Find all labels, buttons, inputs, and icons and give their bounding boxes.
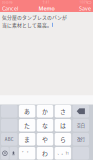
staticText: ら — [60, 135, 66, 143]
staticText: Save — [79, 5, 91, 12]
button[interactable]: ら — [55, 133, 71, 145]
staticText: か — [42, 107, 48, 115]
button[interactable]: 改行 — [73, 133, 89, 145]
button[interactable]: さ — [55, 105, 71, 117]
button[interactable]: Delete — [73, 105, 89, 117]
button[interactable]: や — [37, 133, 53, 145]
staticText: 気分屋のタンブレスのバンが — [2, 14, 67, 21]
staticText: わ — [42, 149, 48, 157]
staticText: や — [42, 135, 48, 143]
button[interactable]: は — [55, 119, 71, 131]
staticText: は — [60, 121, 66, 129]
button[interactable]: Next keyboard — [1, 147, 9, 159]
staticText: Cancel — [2, 5, 18, 12]
staticText: 空白 — [77, 122, 85, 128]
staticText: 改行 — [77, 136, 85, 142]
staticText: 100% — [79, 1, 87, 4]
staticText: あ — [24, 107, 30, 115]
button[interactable]: な — [37, 119, 53, 131]
staticText: さ — [60, 107, 66, 115]
button[interactable]: Save — [77, 5, 93, 12]
staticText: 、。?! — [57, 151, 68, 156]
staticText: ゛゜ — [22, 150, 32, 157]
button[interactable]: か — [37, 105, 53, 117]
button[interactable]: ABC — [1, 133, 17, 145]
staticText: 9:41 — [43, 1, 50, 4]
staticText: 当に素材として最高。 — [2, 21, 52, 28]
staticText: ABC — [5, 136, 14, 142]
staticText: docomo — [2, 1, 13, 4]
button[interactable]: Cancel — [0, 5, 20, 12]
button[interactable]: ゛゜ — [19, 147, 35, 159]
button[interactable]: ま — [19, 133, 35, 145]
button[interactable]: た — [19, 119, 35, 131]
button[interactable]: わ — [37, 147, 53, 159]
staticText: な — [42, 121, 48, 129]
staticText: た — [24, 121, 30, 129]
button[interactable]: 、。?! — [55, 147, 71, 159]
button[interactable]: あ — [19, 105, 35, 117]
button[interactable]: Dictation — [9, 147, 17, 159]
staticText: ま — [24, 135, 30, 143]
staticText: Memo — [38, 5, 54, 12]
button[interactable]: 空白 — [73, 119, 89, 131]
